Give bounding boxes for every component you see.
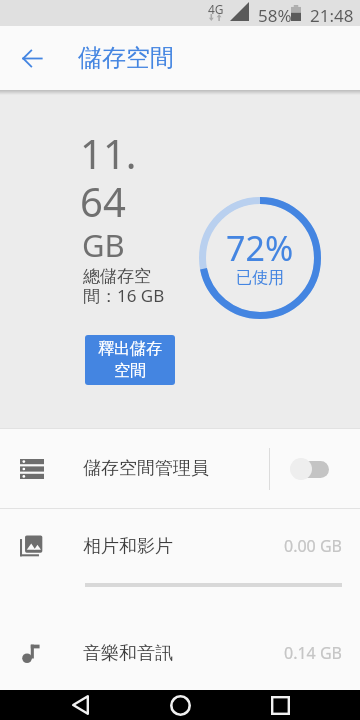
button[interactable]: 相片和影片 — [0, 509, 360, 616]
staticText: 4G — [208, 1, 224, 17]
button[interactable]: Back — [10, 36, 54, 80]
staticText: GB — [82, 224, 125, 266]
staticText: 0.14 GB — [284, 642, 342, 664]
staticText: 0.00 GB — [284, 535, 342, 557]
staticText: 儲存空間管理員 — [83, 457, 209, 480]
staticText: 11.64 — [80, 126, 147, 228]
button[interactable]: 儲存空間管理員 — [0, 429, 360, 508]
staticText: 72% — [226, 225, 294, 271]
staticText: 58% — [258, 4, 292, 27]
button[interactable]: 音樂和音訊 — [0, 616, 360, 690]
staticText: 相片和影片 — [83, 535, 173, 558]
staticText: 總儲存空間：16 GB — [83, 266, 168, 307]
staticText: 釋出儲存空間 — [97, 339, 163, 381]
staticText: 音樂和音訊 — [83, 642, 173, 665]
button[interactable]: 釋出儲存空間 — [85, 335, 175, 385]
staticText: 儲存空間 — [78, 43, 174, 73]
button[interactable]: Storage manager toggle — [285, 452, 341, 486]
button[interactable]: Home — [156, 690, 204, 720]
button[interactable]: Back — [56, 690, 104, 720]
staticText: 21:48 — [310, 4, 354, 27]
button[interactable]: Recent apps — [256, 690, 304, 720]
staticText: 已使用 — [236, 268, 284, 288]
